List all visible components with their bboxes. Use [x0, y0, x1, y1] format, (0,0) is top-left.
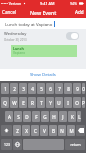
staticText: 94% [70, 1, 78, 6]
staticText: G [43, 114, 47, 120]
button[interactable]: R [28, 97, 36, 108]
button[interactable]: Q [1, 97, 9, 108]
staticText: X [25, 128, 28, 134]
staticText: 6 [49, 86, 52, 92]
staticText: F [35, 114, 38, 120]
button[interactable]: F [32, 111, 40, 122]
button[interactable]: J [59, 111, 67, 122]
staticText: 0 [82, 86, 85, 92]
button[interactable]: Backspace [76, 125, 85, 136]
button[interactable]: W [10, 97, 18, 108]
staticText: S [17, 114, 20, 120]
button[interactable]: B [49, 125, 57, 136]
button[interactable]: Show Details [28, 70, 58, 78]
staticText: P [82, 100, 85, 106]
button[interactable]: Lunch [11, 45, 77, 57]
button[interactable]: X [22, 125, 30, 136]
staticText: 9:41 AM [40, 1, 55, 6]
button[interactable]: T [37, 97, 45, 108]
button[interactable]: All-day switch [66, 32, 79, 40]
button[interactable]: 9 [73, 83, 81, 94]
staticText: D [25, 114, 29, 120]
button[interactable]: 3 [19, 83, 27, 94]
button[interactable]: K [68, 111, 76, 122]
staticText: L [78, 114, 81, 120]
staticText: return [70, 142, 81, 147]
staticText: C [34, 128, 37, 134]
button[interactable]: 4 [28, 83, 36, 94]
button[interactable]: Cancel [0, 8, 19, 16]
button[interactable]: Change keyboard [13, 139, 22, 150]
button[interactable]: 7 [55, 83, 63, 94]
staticText: 3 [22, 86, 25, 92]
button[interactable]: I [64, 97, 72, 108]
staticText: Q [3, 100, 7, 106]
button[interactable]: 2 [10, 83, 18, 94]
staticText: B [52, 128, 55, 134]
staticText: 8 [67, 86, 70, 92]
staticText: H [52, 114, 56, 120]
button[interactable]: H [50, 111, 58, 122]
staticText: 7 [58, 86, 61, 92]
button[interactable]: Y [46, 97, 54, 108]
staticText: Vapiano [13, 51, 26, 55]
button[interactable]: G [41, 111, 49, 122]
button[interactable]: O [73, 97, 81, 108]
staticText: K [71, 114, 74, 120]
staticText: E [22, 100, 25, 106]
staticText: Lunch today at Vapiano [5, 21, 53, 27]
staticText: U [57, 100, 61, 106]
button[interactable]: E [19, 97, 27, 108]
staticText: October 30, 2013 [4, 38, 27, 42]
staticText: Z [16, 128, 19, 134]
button[interactable]: Z [13, 125, 21, 136]
button[interactable]: C [31, 125, 39, 136]
button[interactable]: U [55, 97, 63, 108]
staticText: R [31, 100, 34, 106]
staticText: J [62, 114, 64, 120]
button[interactable]: 5 [37, 83, 45, 94]
staticText: Y [49, 100, 52, 106]
staticText: W [12, 100, 17, 106]
staticText: 2 [13, 86, 16, 92]
button[interactable]: M [67, 125, 75, 136]
staticText: Add [75, 9, 84, 15]
button[interactable]: 123 [1, 139, 12, 150]
staticText: 9 [76, 86, 79, 92]
button[interactable]: L [77, 111, 81, 122]
button[interactable]: N [58, 125, 66, 136]
staticText: Cancel [2, 9, 17, 15]
button[interactable]: Shift [1, 125, 12, 136]
staticText: New Event [30, 9, 57, 16]
staticText: 1 [4, 86, 7, 92]
staticText: Show Details [30, 71, 56, 77]
button[interactable]: Lunch today at Vapiano [0, 18, 86, 29]
staticText: I [67, 100, 69, 106]
staticText: T [40, 100, 43, 106]
staticText: Wednesday [4, 31, 27, 37]
staticText: M [69, 128, 74, 134]
staticText: V [43, 128, 46, 134]
button[interactable]: S [14, 111, 22, 122]
button[interactable]: 6 [46, 83, 54, 94]
staticText: A [8, 114, 11, 120]
button[interactable]: 1 [1, 83, 9, 94]
button[interactable]: V [40, 125, 48, 136]
button[interactable]: 8 [64, 83, 72, 94]
button[interactable]: D [23, 111, 31, 122]
staticText: Lunch [13, 46, 24, 51]
button[interactable]: P [82, 97, 85, 108]
staticText: 4 [31, 86, 34, 92]
button[interactable]: return [65, 139, 85, 150]
button[interactable]: 0 [82, 83, 85, 94]
staticText: ••••• Verizon [1, 1, 22, 6]
button[interactable]: A [5, 111, 13, 122]
staticText: N [60, 128, 64, 134]
staticText: 123 [4, 142, 10, 147]
staticText: O [75, 100, 79, 106]
staticText: 5 [40, 86, 43, 92]
button[interactable]: Add [73, 8, 86, 16]
